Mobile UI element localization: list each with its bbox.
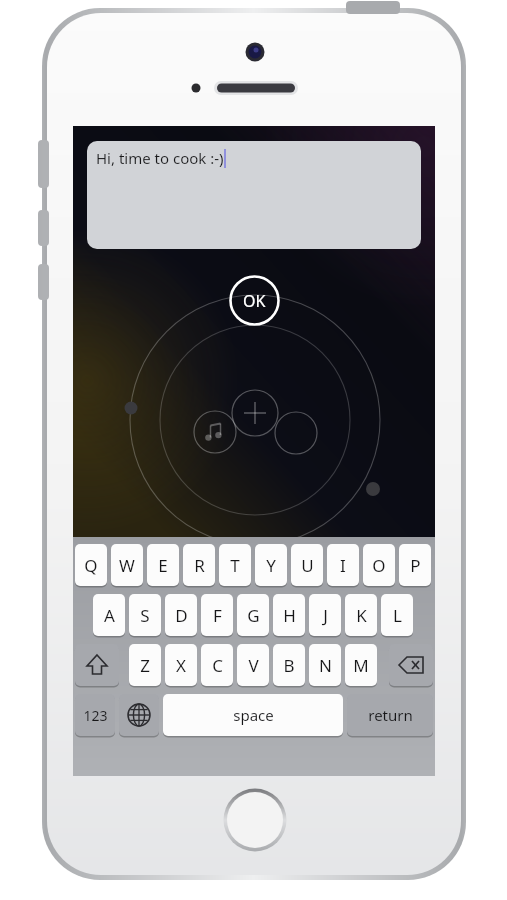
staticText: E [158,554,168,577]
button[interactable]: I [327,544,359,586]
staticText: 18:18 [218,567,292,606]
button[interactable]: W [111,544,143,586]
staticText: G [247,604,260,627]
button[interactable]: V [237,644,269,686]
staticText: Y [266,554,276,577]
staticText: S [140,604,150,627]
staticText: J [323,604,328,627]
staticText: W [119,554,135,577]
button[interactable]: X [165,644,197,686]
staticText: U [301,554,314,577]
button[interactable]: Hi, time to cook :-) [87,141,421,249]
button[interactable]: C [201,644,233,686]
staticText: Ab [285,537,302,555]
staticText: V [248,654,259,677]
button[interactable]: F [201,594,233,636]
staticText: L [393,604,402,627]
staticText: D [175,604,188,627]
button[interactable]: Y [255,544,287,586]
button[interactable]: return [347,694,433,736]
staticText: T [230,554,240,577]
button[interactable]: space [163,694,343,736]
staticText: X [176,654,186,677]
button[interactable]: OK, confirm message [229,275,280,326]
button[interactable]: U [291,544,323,586]
staticText: Z [140,654,150,677]
button[interactable]: R [183,544,215,586]
staticText: B [283,654,295,677]
staticText: A [104,604,115,627]
staticText: return [368,705,413,725]
button[interactable]: D [165,594,197,636]
staticText: C [212,654,223,677]
button[interactable]: L [381,594,413,636]
staticText: Hi, time to cook :-) [96,148,224,168]
button[interactable]: Backspace [389,644,433,686]
staticText: P [410,554,421,577]
button[interactable]: J [309,594,341,636]
staticText: H [283,604,296,627]
staticText: M [353,654,369,677]
button[interactable]: M [345,644,377,686]
button[interactable]: A [93,594,125,636]
staticText: N [319,654,332,677]
button[interactable]: T [219,544,251,586]
button[interactable]: K [345,594,377,636]
button[interactable]: O [363,544,395,586]
staticText: I [340,554,346,577]
staticText: OK [243,290,266,312]
staticText: 123 [83,706,108,725]
button[interactable]: Q [75,544,107,586]
button[interactable]: S [129,594,161,636]
staticText: O [372,554,386,577]
button[interactable]: Z [129,644,161,686]
button[interactable]: E [147,544,179,586]
staticText: space [233,705,274,725]
button[interactable]: Switch keyboard [119,694,159,736]
staticText: K [356,604,367,627]
button[interactable]: B [273,644,305,686]
staticText: R [194,554,205,577]
button[interactable]: N [309,644,341,686]
button[interactable]: Shift [75,644,119,686]
button[interactable]: P [399,544,431,586]
staticText: Q [84,554,98,577]
staticText: F [213,604,222,627]
button[interactable]: H [273,594,305,636]
button[interactable]: 123 [75,694,115,736]
button[interactable]: G [237,594,269,636]
